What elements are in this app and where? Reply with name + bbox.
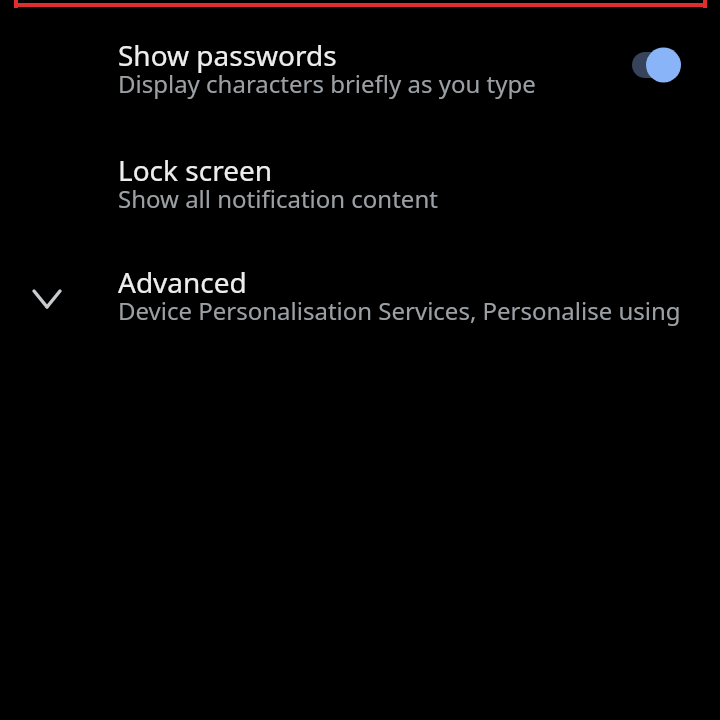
staticText: Show passwords <box>118 36 337 74</box>
staticText: Show all notification content <box>118 182 714 216</box>
staticText: Advanced <box>118 263 247 301</box>
button[interactable]: Show passwords toggle <box>610 28 704 102</box>
staticText: Device Personalisation Services, Persona… <box>118 294 714 328</box>
button[interactable] <box>0 14 720 114</box>
staticText: Lock screen <box>118 151 273 189</box>
staticText: Display characters briefly as you type <box>118 67 714 101</box>
button[interactable] <box>0 241 720 341</box>
button[interactable] <box>0 129 720 229</box>
button[interactable]: Expand Advanced <box>18 270 76 328</box>
